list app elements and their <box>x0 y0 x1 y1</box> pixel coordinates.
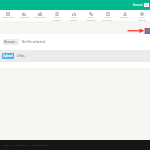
staticText: Reports <box>120 16 129 19</box>
staticText: Production <box>34 16 46 19</box>
staticText: Transport <box>19 16 30 19</box>
button[interactable]: Menu <box>144 3 149 7</box>
button[interactable]: Dashboard <box>0 10 16 21</box>
staticText: Browse... <box>4 40 18 44</box>
staticText: Daily <box>88 16 94 19</box>
staticText: History <box>138 19 146 21</box>
button[interactable]: Upload <box>2 53 14 59</box>
button[interactable]: Item <box>133 10 150 21</box>
button[interactable]: Order <box>99 10 116 21</box>
staticText: Details <box>53 19 61 21</box>
staticText: Solutions | Privacy Policy | Desktop Ver… <box>2 144 50 147</box>
button[interactable]: Item <box>48 10 65 21</box>
staticText: Report <box>70 19 78 21</box>
button[interactable]: Account <box>132 3 144 7</box>
staticText: No file selected. <box>22 40 46 44</box>
button[interactable]: Production <box>32 10 48 21</box>
button[interactable]: Reports <box>116 10 133 21</box>
button[interactable]: Transport <box>16 10 32 21</box>
staticText: Expense <box>86 19 96 21</box>
staticText: Dashboard <box>2 16 14 19</box>
staticText: Item <box>54 16 60 19</box>
staticText: Account <box>133 3 143 7</box>
staticText: Stock <box>71 16 77 19</box>
button[interactable]: Browse... <box>3 39 19 45</box>
staticText: 4 files <box>17 54 25 58</box>
button[interactable]: Stock <box>65 10 82 21</box>
button[interactable]: Daily <box>82 10 99 21</box>
staticText: Summary <box>102 19 113 21</box>
staticText: Order <box>104 16 111 19</box>
staticText: Item <box>139 16 145 19</box>
staticText: Upload <box>3 54 13 58</box>
